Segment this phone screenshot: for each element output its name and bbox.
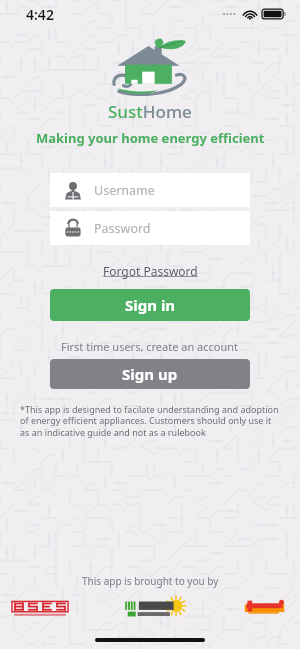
staticText: Username bbox=[94, 182, 155, 199]
staticText: Sign in bbox=[125, 295, 176, 315]
staticText: This app is brought to you by bbox=[82, 574, 219, 588]
button[interactable]: Username bbox=[50, 173, 250, 207]
button[interactable]: Sign up bbox=[50, 359, 250, 389]
staticText: Password bbox=[94, 220, 151, 237]
staticText: First time users, create an account bbox=[61, 339, 239, 354]
button[interactable]: Password bbox=[50, 211, 250, 245]
button[interactable]: Sign in bbox=[50, 289, 250, 321]
staticText: *This app is designed to facilate unders… bbox=[20, 403, 280, 439]
staticText: Forgot Password bbox=[103, 263, 198, 279]
staticText: 4:42 bbox=[26, 5, 54, 24]
button[interactable]: Forgot Password bbox=[97, 261, 204, 281]
staticText: Making your home energy efficient bbox=[36, 129, 265, 147]
staticText: SustHome bbox=[108, 100, 192, 123]
staticText: Sign up bbox=[122, 364, 178, 384]
